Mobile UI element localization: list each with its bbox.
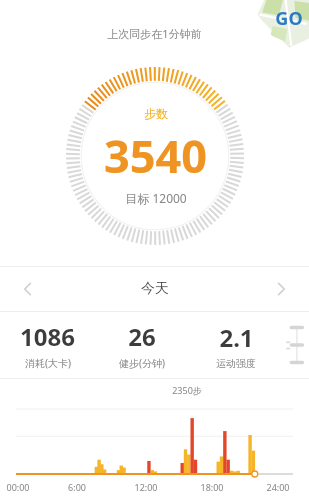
staticText: 00:00	[6, 481, 30, 493]
staticText: 24:00	[266, 481, 290, 493]
button[interactable]: 2.1	[189, 321, 283, 370]
staticText: 3540	[104, 125, 207, 186]
staticText: 今天	[141, 280, 169, 298]
staticText: 12:00	[134, 481, 158, 493]
staticText: 1086	[20, 320, 75, 353]
staticText: 2.1	[219, 321, 254, 354]
staticText: 目标 12000	[125, 190, 187, 206]
staticText: 步数	[144, 106, 168, 121]
staticText: 消耗(大卡)	[25, 356, 71, 370]
staticText: 26	[128, 320, 156, 353]
staticText: 2350步	[172, 384, 202, 396]
staticText: 健步(分钟)	[119, 356, 165, 370]
staticText: 6:00	[68, 481, 86, 493]
staticText: 上次同步在1分钟前	[107, 26, 202, 41]
button[interactable]: Next day	[265, 273, 297, 305]
staticText: 运动强度	[216, 357, 256, 370]
button[interactable]: 1086	[0, 320, 95, 370]
button[interactable]: 2350步	[0, 383, 309, 500]
button[interactable]: GO map	[257, 0, 309, 52]
button[interactable]: 26	[95, 320, 189, 370]
button[interactable]: Previous day	[12, 273, 44, 305]
button[interactable]: 步数	[66, 67, 244, 245]
staticText: 18:00	[200, 481, 224, 493]
staticText: GO	[275, 6, 303, 31]
